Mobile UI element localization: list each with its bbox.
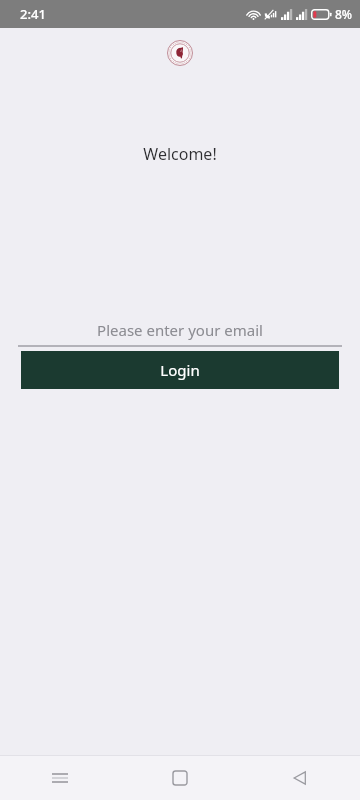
button[interactable]: Please enter your email [18,317,342,347]
staticText: 2:41 [20,5,46,23]
button[interactable]: Recent apps [0,755,120,800]
staticText: Welcome! [143,143,217,165]
staticText: Please enter your email [97,320,263,340]
staticText: Login [160,360,200,380]
button[interactable]: Back [240,755,360,800]
staticText: 8% [335,6,353,22]
button[interactable]: Login [21,351,339,389]
button[interactable]: Home [120,755,240,800]
